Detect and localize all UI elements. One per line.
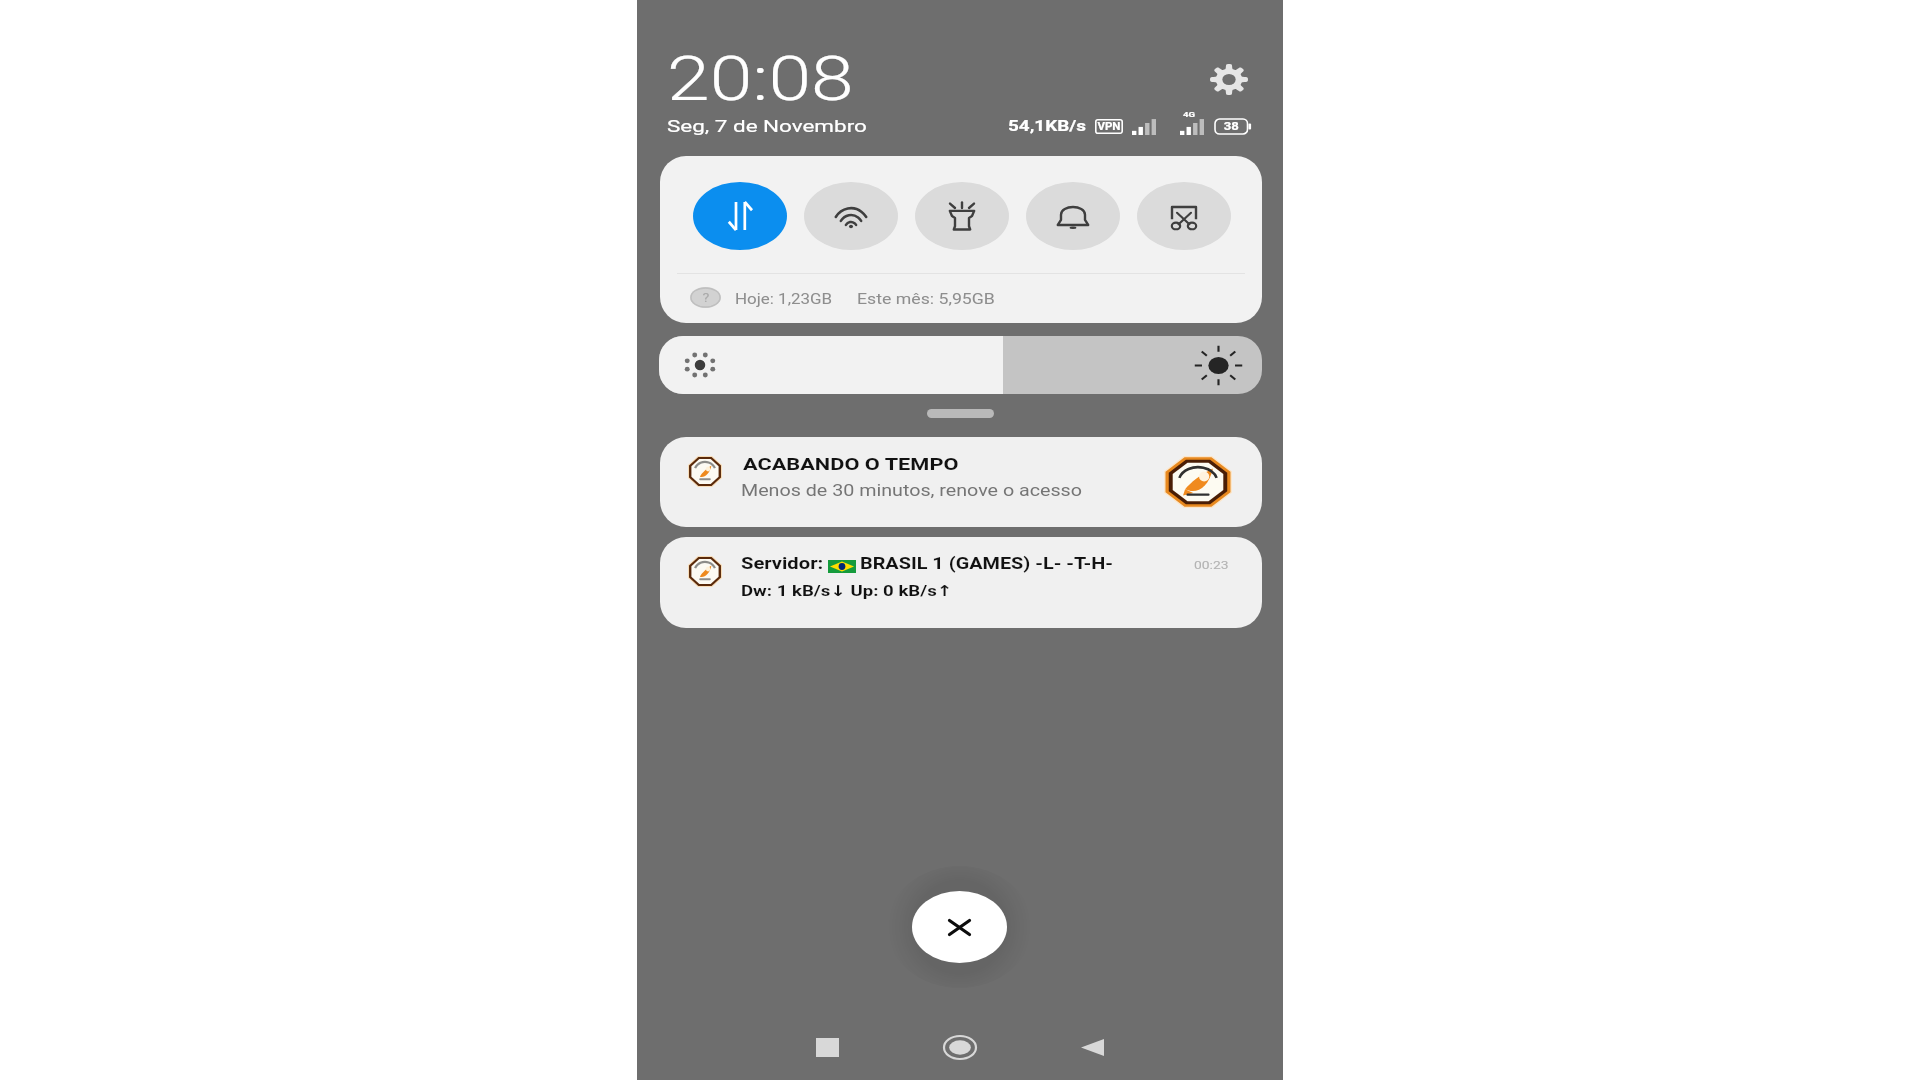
button[interactable]: Wi-Fi: [804, 182, 898, 250]
button[interactable]: Início: [930, 1017, 990, 1077]
button[interactable]: Voltar: [1062, 1017, 1122, 1077]
staticText: 00:23: [1194, 559, 1229, 572]
staticText: 4G: [1183, 110, 1196, 119]
staticText: 20:08: [667, 43, 855, 114]
staticText: ACABANDO O TEMPO: [743, 454, 959, 474]
button[interactable]: ACABANDO O TEMPO: [660, 437, 1262, 527]
staticText: 54,1KB/s: [1008, 117, 1086, 135]
button[interactable]: Brilho: [659, 336, 1262, 394]
staticText: ?: [702, 291, 710, 305]
button[interactable]: Não perturbe: [1026, 182, 1120, 250]
staticText: Dw: 1 kB/s↓ Up: 0 kB/s↑: [741, 582, 953, 600]
staticText: Servidor:: [741, 554, 824, 573]
staticText: BRASIL 1 (GAMES) -L- -T-H-: [860, 554, 1114, 573]
staticText: Menos de 30 minutos, renove o acesso: [741, 481, 1083, 500]
button[interactable]: Captura de tela: [1137, 182, 1231, 250]
button[interactable]: Expandir notificações: [917, 403, 1004, 424]
button[interactable]: Fechar notificações: [912, 891, 1007, 963]
staticText: Hoje: 1,23GB: [735, 290, 832, 308]
staticText: VPN: [1097, 121, 1121, 133]
staticText: Seg, 7 de Novembro: [667, 116, 868, 136]
staticText: 38: [1224, 120, 1239, 133]
button[interactable]: Recentes: [797, 1017, 857, 1077]
button[interactable]: Dados móveis: [693, 182, 787, 250]
button[interactable]: Configurações: [1198, 54, 1260, 104]
staticText: Este mês: 5,95GB: [857, 290, 995, 308]
button[interactable]: Lanterna: [915, 182, 1009, 250]
button[interactable]: Servidor:: [660, 537, 1262, 628]
